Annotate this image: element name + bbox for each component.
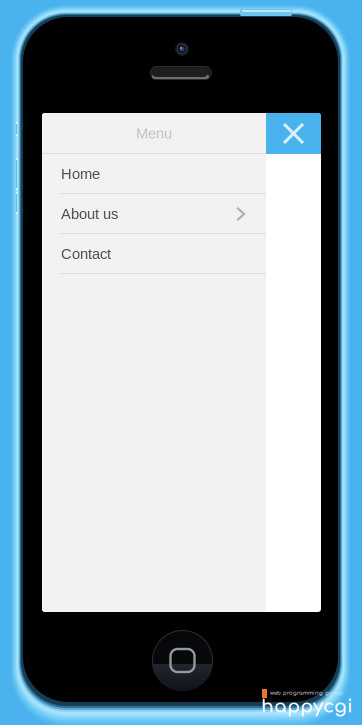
- staticText: web programming group: [270, 690, 343, 696]
- button[interactable]: Home: [42, 154, 266, 194]
- staticText: Menu: [136, 125, 172, 142]
- button[interactable]: Contact: [42, 234, 266, 274]
- staticText: Contact: [61, 246, 111, 262]
- staticText: Home: [61, 166, 100, 182]
- button[interactable]: Close menu: [266, 113, 321, 154]
- staticText: About us: [61, 206, 118, 222]
- button[interactable]: About us: [42, 194, 266, 234]
- staticText: happycgi: [261, 696, 353, 717]
